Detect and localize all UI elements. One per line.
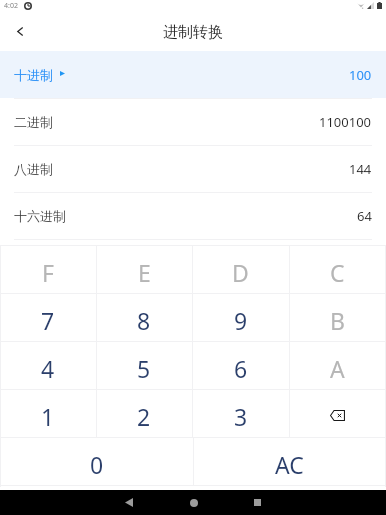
button[interactable]: 八进制 (0, 145, 386, 192)
button[interactable]: 7 (0, 294, 96, 342)
staticText: 十六进制 (14, 208, 66, 224)
staticText: 8 (137, 305, 151, 336)
staticText: 6 (234, 353, 248, 384)
staticText: B (330, 305, 345, 336)
button[interactable]: Back (116, 490, 141, 515)
staticText: 1 (41, 401, 55, 432)
button[interactable]: E (96, 246, 192, 294)
staticText: AC (275, 449, 304, 480)
staticText: 64 (357, 207, 372, 225)
button[interactable]: 4 (0, 342, 96, 390)
staticText: 2 (137, 401, 151, 432)
staticText: 3 (234, 401, 248, 432)
staticText: 4:02 (4, 1, 18, 11)
button[interactable]: D (192, 246, 289, 294)
staticText: E (138, 257, 151, 288)
button[interactable]: 二进制 (0, 98, 386, 145)
button[interactable]: Back (0, 16, 39, 51)
button[interactable]: 十六进制 (0, 192, 386, 239)
button[interactable]: C (289, 246, 386, 294)
staticText: 9 (234, 305, 248, 336)
staticText: D (232, 257, 249, 288)
staticText: A (330, 353, 345, 384)
button[interactable]: AC (193, 438, 386, 486)
button[interactable]: 5 (96, 342, 192, 390)
button[interactable]: Home (181, 490, 206, 515)
button[interactable]: B (289, 294, 386, 342)
button[interactable]: Recents (245, 490, 270, 515)
staticText: 0 (90, 449, 104, 480)
staticText: F (42, 257, 54, 288)
staticText: 7 (41, 305, 55, 336)
staticText: C (330, 257, 345, 288)
staticText: 八进制 (14, 161, 53, 177)
button[interactable]: F (0, 246, 96, 294)
staticText: 二进制 (14, 114, 53, 130)
button[interactable]: Backspace (289, 390, 386, 438)
button[interactable]: 2 (96, 390, 192, 438)
button[interactable]: 6 (192, 342, 289, 390)
staticText: 144 (349, 160, 372, 178)
button[interactable]: A (289, 342, 386, 390)
button[interactable]: 8 (96, 294, 192, 342)
button[interactable]: 1 (0, 390, 96, 438)
button[interactable]: 十进制 (0, 51, 386, 98)
button[interactable]: 9 (192, 294, 289, 342)
staticText: 5 (137, 353, 151, 384)
button[interactable]: 0 (0, 438, 193, 486)
staticText: 4 (41, 353, 55, 384)
button[interactable]: 3 (192, 390, 289, 438)
other: Backspace (330, 410, 345, 421)
staticText: 1100100 (319, 113, 372, 131)
staticText: 十进制 (14, 67, 53, 83)
staticText: 100 (349, 66, 372, 84)
staticText: 进制转换 (163, 23, 223, 42)
